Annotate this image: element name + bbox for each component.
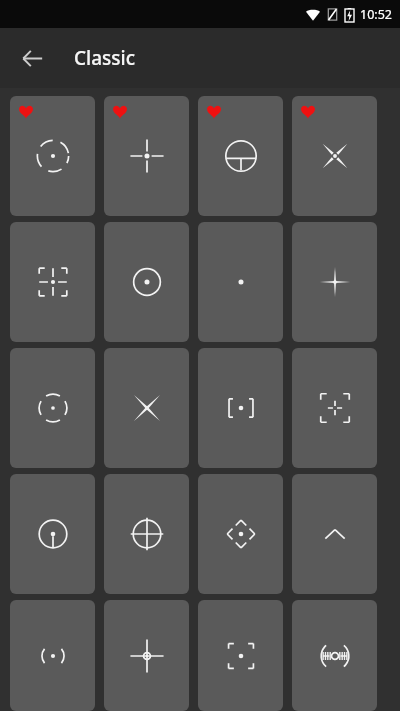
button[interactable]: Reticle 16 (292, 474, 377, 594)
button[interactable]: Reticle 8 (292, 222, 377, 342)
button[interactable]: Reticle 7 (198, 222, 283, 342)
staticText: 10:52 (360, 6, 392, 23)
button[interactable]: Reticle 13 (10, 474, 95, 594)
button[interactable]: Reticle 14 (104, 474, 189, 594)
button[interactable]: Reticle 2 (104, 96, 189, 216)
button[interactable]: Reticle 18 (104, 600, 189, 711)
button[interactable]: Reticle 10 (104, 348, 189, 468)
button[interactable]: Reticle 6 (104, 222, 189, 342)
button[interactable]: Reticle 17 (10, 600, 95, 711)
button[interactable]: Reticle 3 (198, 96, 283, 216)
button[interactable]: Reticle 11 (198, 348, 283, 468)
button[interactable]: Reticle 9 (10, 348, 95, 468)
button[interactable]: Reticle 15 (198, 474, 283, 594)
button[interactable]: Reticle 4 (292, 96, 377, 216)
button[interactable]: Back (8, 34, 56, 82)
button[interactable]: Reticle 12 (292, 348, 377, 468)
button[interactable]: Reticle 20 (292, 600, 377, 711)
button[interactable]: Reticle 5 (10, 222, 95, 342)
staticText: Classic (74, 45, 135, 71)
button[interactable]: Reticle 19 (198, 600, 283, 711)
button[interactable]: Reticle 1 (10, 96, 95, 216)
